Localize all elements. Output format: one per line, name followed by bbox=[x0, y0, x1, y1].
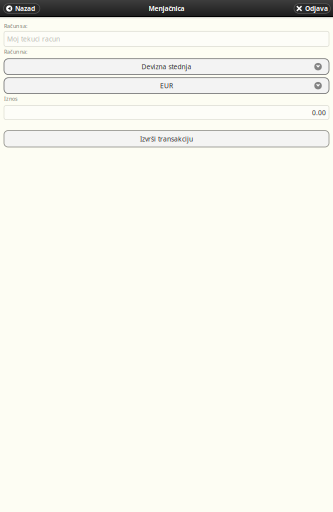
staticText: Račun sa: bbox=[4, 22, 27, 29]
staticText: Moj tekuci racun bbox=[7, 34, 60, 43]
staticText: 0.00 bbox=[312, 108, 326, 117]
staticText: Izvrši transakciju bbox=[140, 134, 193, 143]
staticText: EUR bbox=[160, 81, 173, 90]
button[interactable]: EUR bbox=[4, 78, 329, 94]
staticText: Račun na: bbox=[4, 48, 27, 55]
button[interactable]: Nazad bbox=[3, 4, 40, 13]
button[interactable]: Izvrši transakciju bbox=[4, 131, 329, 147]
staticText: Nazad bbox=[15, 4, 35, 13]
staticText: Menjačnica bbox=[148, 4, 184, 13]
staticText: Devizna stednja bbox=[141, 62, 191, 71]
staticText: Odjava bbox=[305, 4, 328, 13]
button[interactable]: Devizna stednja bbox=[4, 59, 329, 75]
staticText: Iznos bbox=[4, 95, 18, 102]
button[interactable]: Odjava bbox=[294, 4, 330, 13]
